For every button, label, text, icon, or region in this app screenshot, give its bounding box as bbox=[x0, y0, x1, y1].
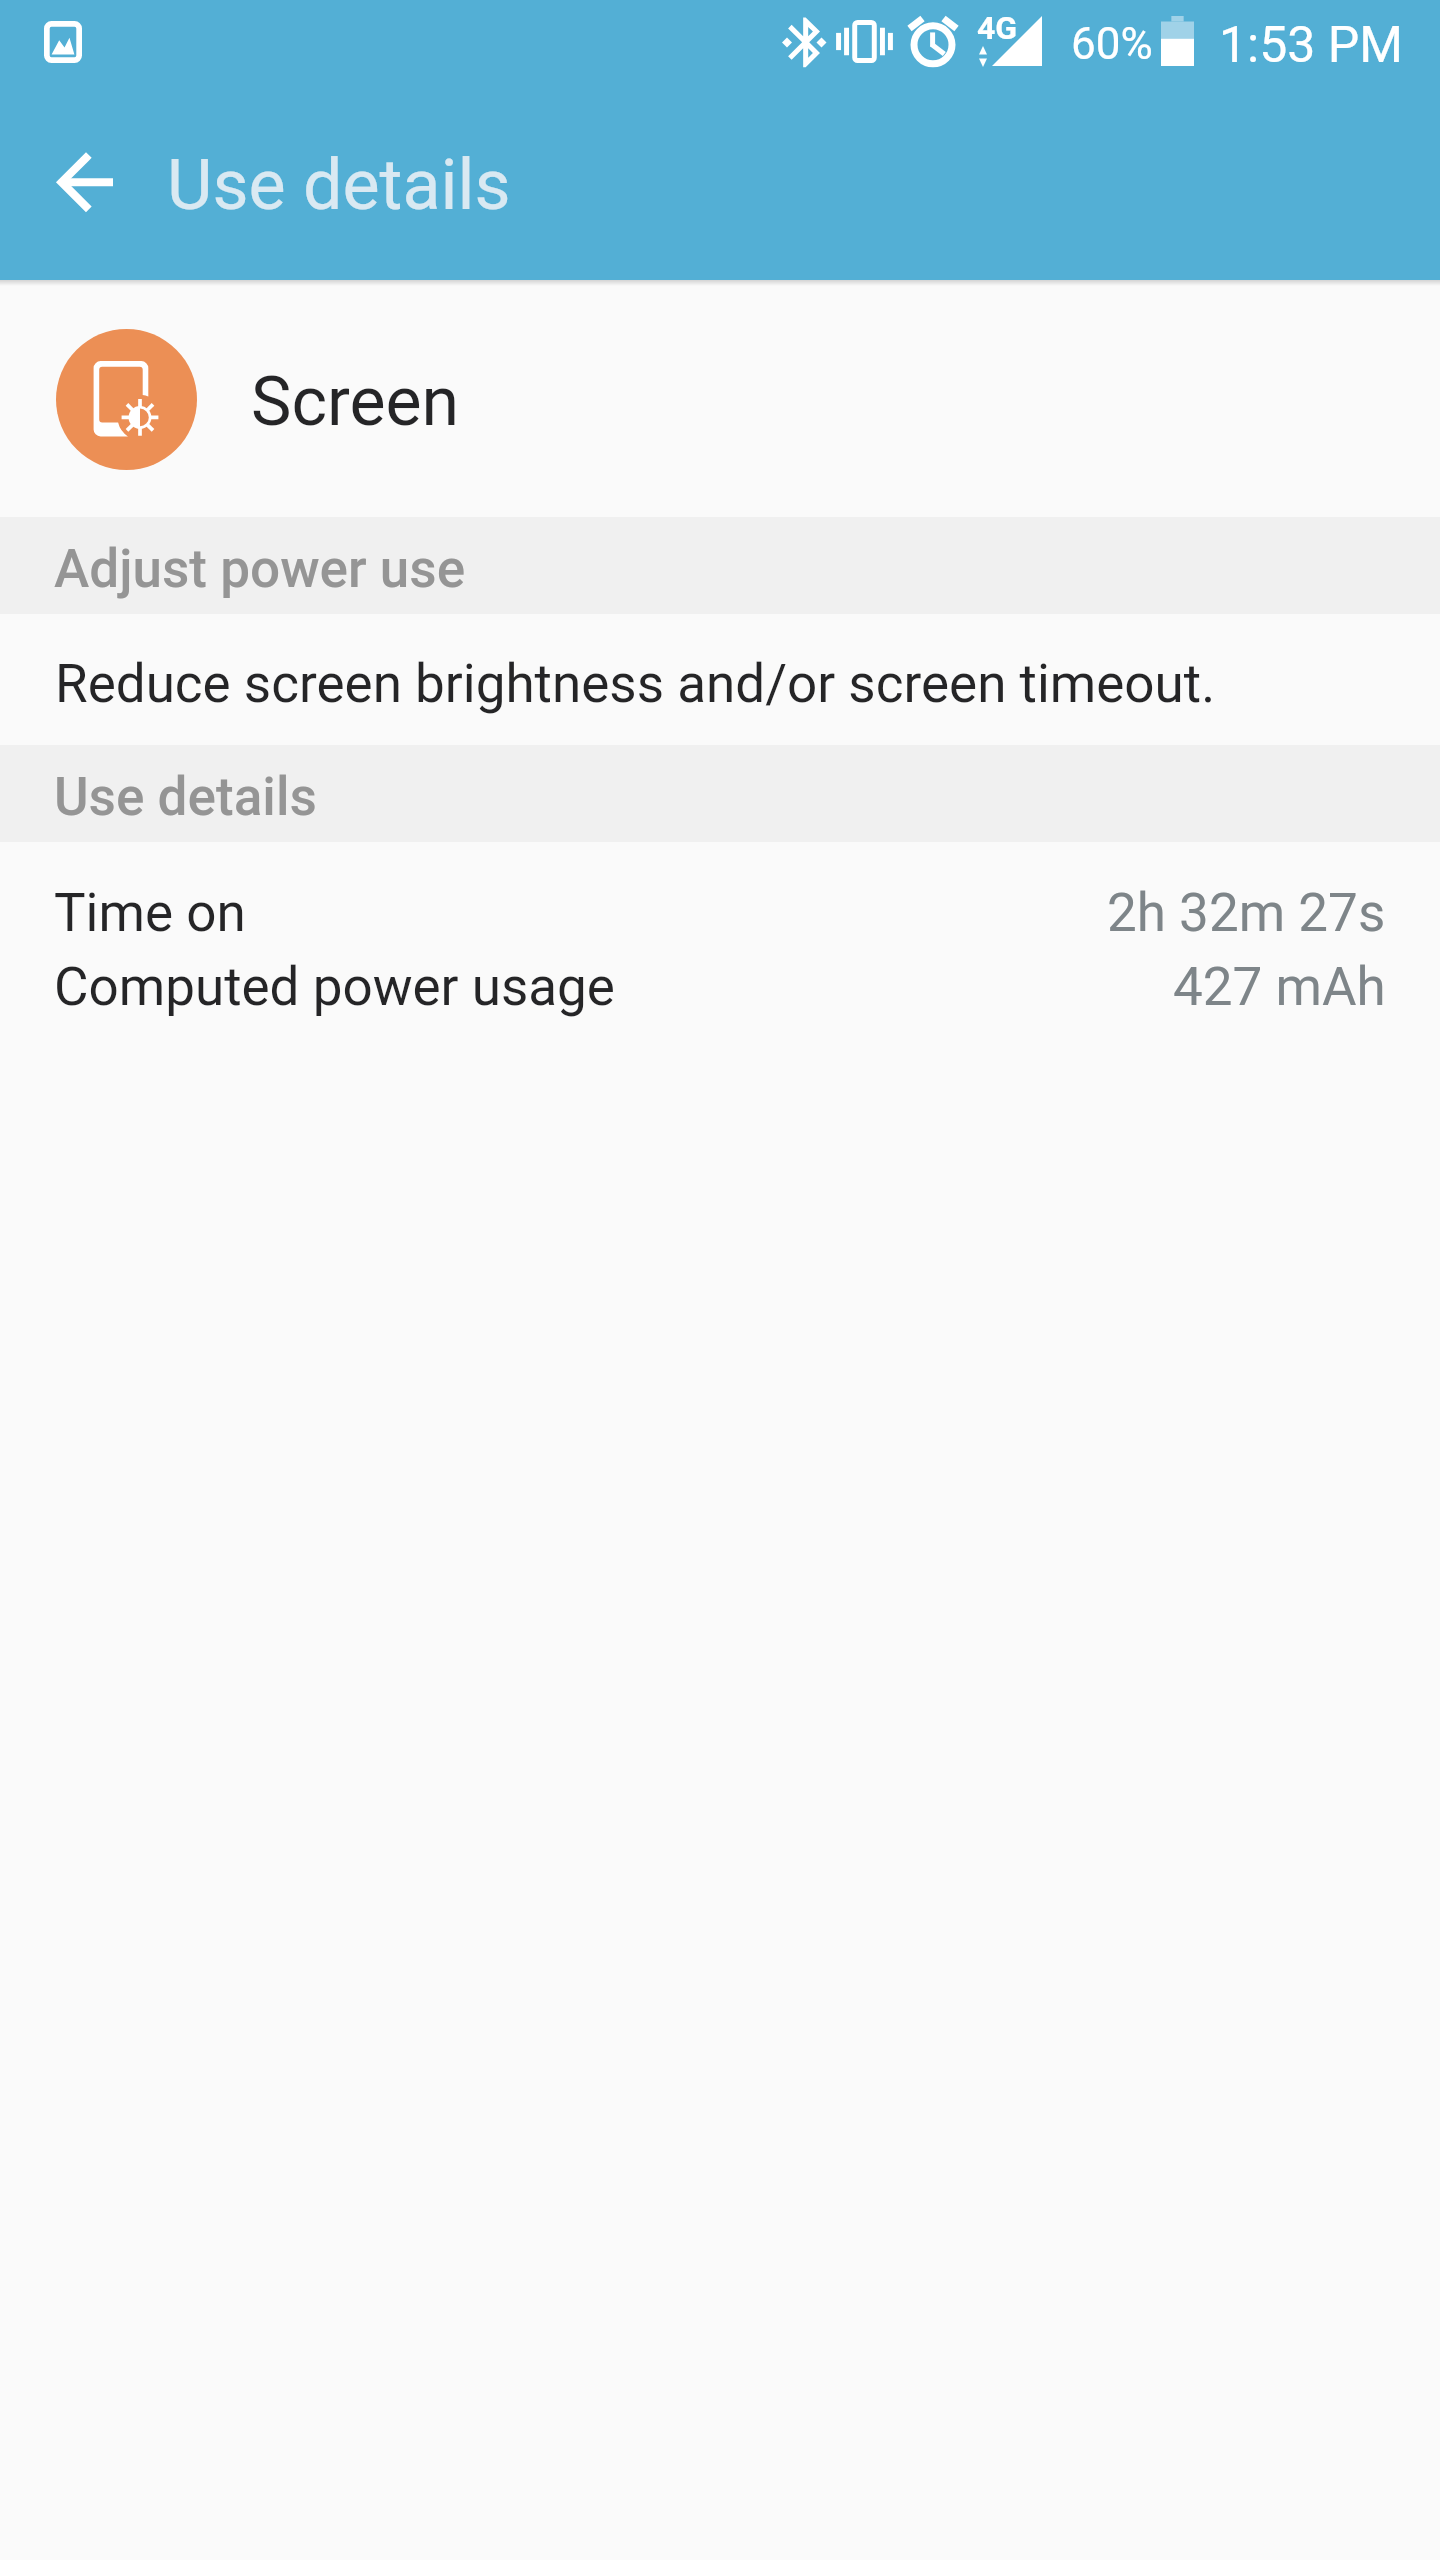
staticText: 2h 32m 27s bbox=[1107, 882, 1386, 944]
button[interactable]: Computed power usage bbox=[0, 948, 1440, 1022]
button[interactable]: Navigate up bbox=[28, 125, 140, 237]
button[interactable]: Screen bbox=[0, 286, 1440, 517]
button[interactable]: Time on bbox=[0, 874, 1440, 948]
staticText: Screen bbox=[251, 362, 460, 442]
staticText: 427 mAh bbox=[1173, 956, 1386, 1018]
staticText: 1:53 PM bbox=[1219, 16, 1404, 75]
staticText: Reduce screen brightness and/or screen t… bbox=[55, 653, 1216, 715]
staticText: Adjust power use bbox=[54, 538, 466, 600]
staticText: Use details bbox=[167, 144, 511, 226]
staticText: Time on bbox=[54, 882, 246, 944]
staticText: 4G bbox=[977, 9, 1018, 47]
button[interactable]: Reduce screen brightness and/or screen t… bbox=[0, 614, 1440, 745]
staticText: Use details bbox=[54, 766, 317, 828]
staticText: Computed power usage bbox=[54, 956, 615, 1018]
staticText: 60% bbox=[1071, 18, 1153, 70]
